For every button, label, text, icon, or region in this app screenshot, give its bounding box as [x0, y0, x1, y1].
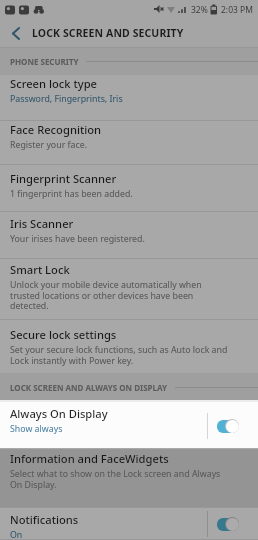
staticText: Always On Display [10, 406, 108, 421]
staticText: 1 fingerprint has been added. [10, 188, 133, 200]
staticText: Your irises have been registered. [10, 233, 145, 245]
staticText: Information and FaceWidgets [10, 451, 169, 466]
staticText: Select what to show on the Lock screen a… [10, 468, 221, 491]
staticText: Set your secure lock functions, such as … [10, 344, 228, 367]
button[interactable]: Secure lock settings [0, 320, 258, 373]
staticText: On [10, 529, 23, 539]
staticText: Password, Fingerprints, Iris [10, 93, 123, 105]
staticText: Fingerprint Scanner [10, 171, 117, 186]
staticText: Unlock your mobile device automatically … [10, 279, 202, 312]
staticText: Iris Scanner [10, 216, 74, 231]
staticText: LOCK SCREEN AND ALWAYS ON DISPLAY [10, 382, 168, 393]
staticText: Face Recognition [10, 122, 102, 137]
button[interactable]: Iris Scanner [0, 212, 258, 258]
button[interactable]: Screen lock type [0, 75, 258, 120]
button[interactable]: Fingerprint Scanner [0, 165, 258, 211]
button[interactable]: Face Recognition [0, 121, 258, 164]
staticText: 2:03 PM [221, 4, 253, 16]
staticText: Secure lock settings [10, 327, 117, 342]
button[interactable]: LOCK SCREEN AND SECURITY [0, 19, 258, 47]
staticText: Register your face. [10, 139, 88, 151]
staticText: Screen lock type [10, 76, 97, 91]
staticText: LOCK SCREEN AND SECURITY [32, 26, 184, 40]
button[interactable]: Information and FaceWidgets [0, 450, 258, 507]
staticText: PHONE SECURITY [10, 56, 79, 67]
staticText: Notifications [10, 512, 79, 527]
button[interactable]: Smart Lock [0, 259, 258, 319]
staticText: 32% [191, 4, 208, 16]
staticText: Show always [10, 423, 63, 435]
button[interactable]: Always On Display [0, 402, 258, 449]
staticText: Smart Lock [10, 262, 70, 277]
button[interactable]: Notifications [0, 508, 258, 539]
